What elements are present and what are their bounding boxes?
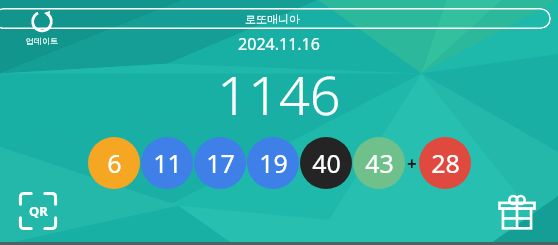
button[interactable]: 로또매니아: [0, 8, 551, 29]
staticText: 업데이트: [26, 36, 58, 46]
button[interactable]: 6: [88, 137, 140, 189]
staticText: 6: [107, 146, 122, 180]
button[interactable]: Gift: [498, 193, 536, 231]
button[interactable]: 28: [419, 137, 471, 189]
staticText: 28: [431, 146, 460, 180]
button[interactable]: Update: [20, 6, 64, 48]
staticText: 2024.11.16: [238, 33, 320, 55]
button[interactable]: 11: [141, 137, 193, 189]
staticText: 40: [312, 146, 341, 180]
staticText: 로또매니아: [245, 12, 300, 26]
staticText: 17: [206, 146, 235, 180]
staticText: 43: [365, 146, 394, 180]
button[interactable]: 43: [353, 137, 405, 189]
staticText: 11: [153, 146, 182, 180]
staticText: QR: [29, 202, 48, 220]
staticText: 1146: [217, 57, 341, 131]
button[interactable]: 17: [194, 137, 246, 189]
button[interactable]: Scan QR code: [18, 191, 58, 231]
staticText: +: [407, 152, 417, 175]
button[interactable]: 40: [300, 137, 352, 189]
button[interactable]: 19: [247, 137, 299, 189]
staticText: 19: [259, 146, 288, 180]
